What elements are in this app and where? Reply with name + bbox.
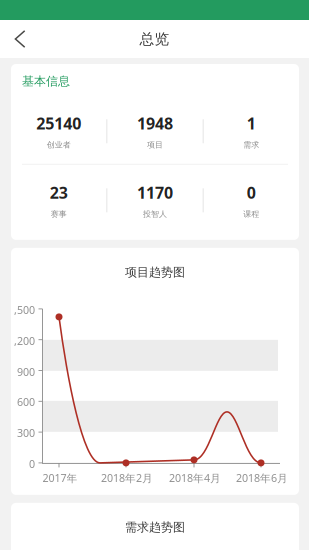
staticText: 基本信息 [22, 74, 70, 89]
staticText: 600 [17, 395, 35, 409]
staticText: 1 [247, 113, 256, 134]
staticText: 25140 [36, 113, 81, 134]
staticText: 2018年2月 [101, 471, 153, 485]
staticText: 900 [17, 365, 35, 379]
button[interactable]: Back [0, 20, 40, 58]
staticText: 项目趋势图 [125, 265, 185, 280]
staticText: 23 [50, 182, 68, 203]
staticText: ,500 [14, 303, 35, 317]
staticText: 需求 [243, 140, 259, 150]
staticText: 300 [17, 426, 35, 440]
staticText: 投智人 [143, 209, 167, 219]
staticText: 创业者 [47, 140, 71, 150]
staticText: 2018年6月 [236, 471, 288, 485]
staticText: 2018年4月 [169, 471, 221, 485]
staticText: 2017年 [42, 471, 77, 485]
staticText: 1170 [137, 182, 173, 203]
staticText: 总览 [139, 30, 169, 48]
staticText: ,200 [14, 334, 35, 348]
staticText: 赛事 [51, 209, 67, 219]
staticText: 0 [29, 457, 35, 471]
staticText: 0 [247, 182, 256, 203]
staticText: 需求趋势图 [125, 520, 185, 535]
staticText: 项目 [147, 140, 163, 150]
staticText: 课程 [243, 209, 259, 219]
staticText: 1948 [137, 113, 173, 134]
